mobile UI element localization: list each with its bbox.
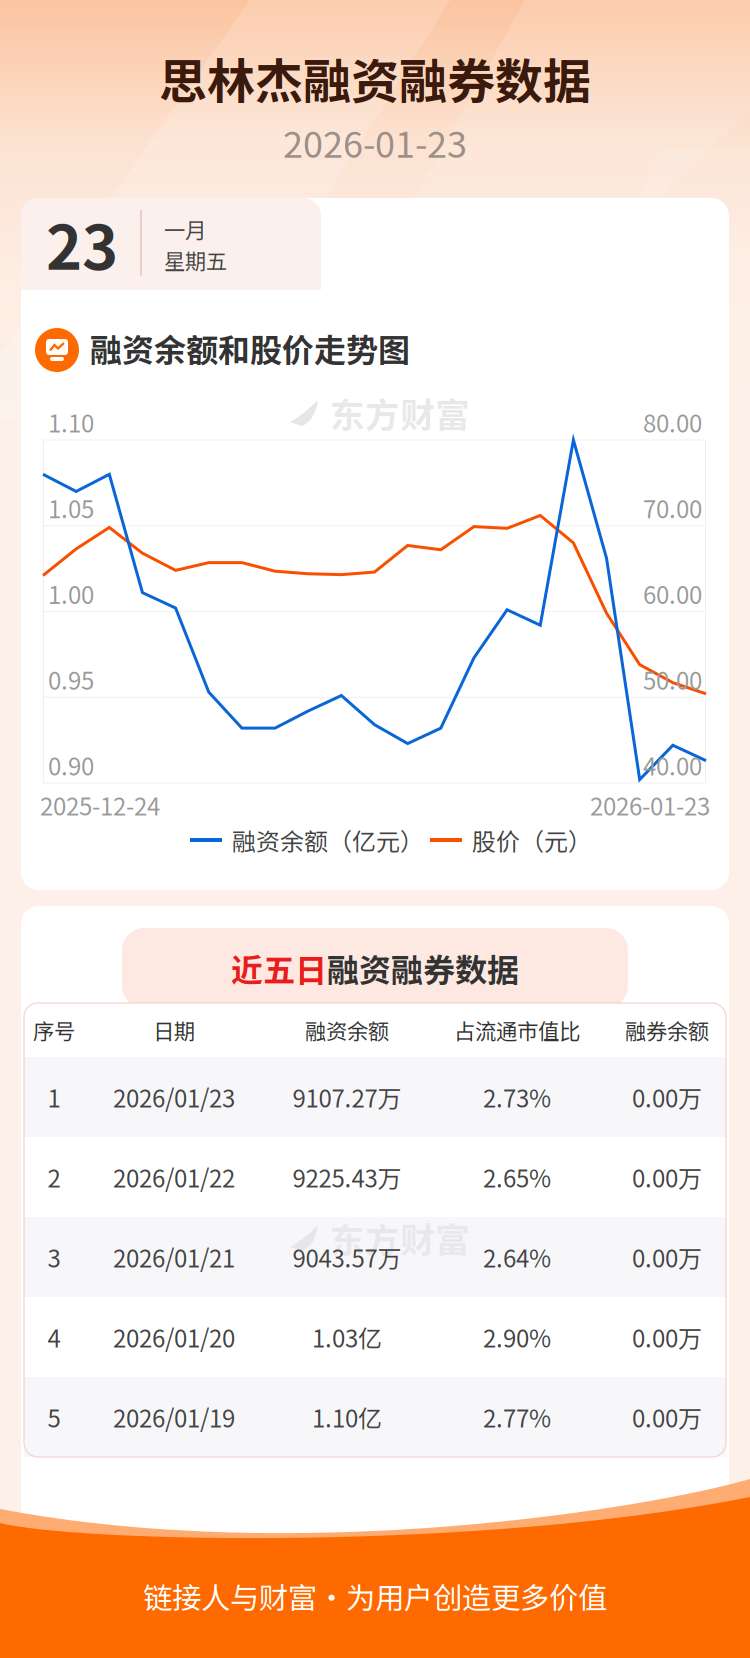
staticText: 1.10亿 bbox=[312, 1400, 382, 1434]
staticText: 1.10 bbox=[48, 405, 94, 439]
staticText: 0.00万 bbox=[632, 1400, 702, 1434]
staticText: 1 bbox=[47, 1080, 60, 1114]
staticText: 星期五 bbox=[164, 245, 227, 275]
staticText: 融资余额 bbox=[305, 1015, 389, 1045]
staticText: 0.00万 bbox=[632, 1240, 702, 1274]
staticText: 5 bbox=[47, 1400, 60, 1434]
staticText: 占流通市值比 bbox=[454, 1015, 580, 1045]
staticText: 1.05 bbox=[48, 490, 94, 525]
staticText: 23 bbox=[46, 199, 118, 287]
staticText: 近五日 bbox=[231, 945, 327, 991]
staticText: 2.65% bbox=[483, 1160, 551, 1194]
staticText: 链接人与财富·为用户创造更多价值 bbox=[143, 1575, 607, 1617]
staticText: 融资余额和股价走势图 bbox=[90, 325, 410, 371]
staticText: 60.00 bbox=[643, 576, 702, 611]
staticText: 序号 bbox=[33, 1015, 75, 1045]
staticText: 4 bbox=[47, 1320, 60, 1354]
staticText: 0.00万 bbox=[632, 1160, 702, 1194]
staticText: 80.00 bbox=[643, 405, 702, 439]
staticText: 东方财富 bbox=[330, 1213, 470, 1263]
staticText: 1.00 bbox=[48, 576, 94, 611]
staticText: 9107.27万 bbox=[292, 1080, 401, 1114]
staticText: 2.77% bbox=[483, 1400, 551, 1434]
staticText: 0.95 bbox=[48, 662, 94, 697]
staticText: 40.00 bbox=[643, 748, 702, 782]
staticText: 融券余额 bbox=[625, 1015, 709, 1045]
staticText: 日期 bbox=[153, 1015, 195, 1045]
staticText: 0.00万 bbox=[632, 1320, 702, 1354]
staticText: 2026/01/20 bbox=[113, 1320, 235, 1354]
staticText: 思林杰融资融券数据 bbox=[159, 43, 591, 113]
staticText: 3 bbox=[47, 1240, 60, 1274]
staticText: 2.90% bbox=[483, 1320, 551, 1354]
staticText: 融资融券数据 bbox=[327, 945, 519, 991]
staticText: 2025-12-24 bbox=[40, 788, 160, 822]
staticText: 0.90 bbox=[48, 748, 94, 782]
staticText: 2026-01-23 bbox=[283, 116, 467, 168]
staticText: 股价（元） bbox=[472, 823, 592, 857]
staticText: 2026/01/22 bbox=[113, 1160, 235, 1194]
staticText: 0.00万 bbox=[632, 1080, 702, 1114]
staticText: 2026/01/23 bbox=[113, 1080, 235, 1114]
staticText: 融资余额（亿元） bbox=[232, 823, 424, 857]
staticText: 2026/01/21 bbox=[113, 1240, 235, 1274]
staticText: 2 bbox=[47, 1160, 60, 1194]
staticText: 2026/01/19 bbox=[113, 1400, 235, 1434]
staticText: 9043.57万 bbox=[292, 1240, 401, 1274]
staticText: 东方财富 bbox=[330, 388, 470, 438]
staticText: 1.03亿 bbox=[312, 1320, 382, 1354]
staticText: 2026-01-23 bbox=[590, 788, 710, 822]
staticText: 2.73% bbox=[483, 1080, 551, 1114]
staticText: 一月 bbox=[164, 214, 206, 244]
staticText: 9225.43万 bbox=[292, 1160, 401, 1194]
staticText: 2.64% bbox=[483, 1240, 551, 1274]
staticText: 70.00 bbox=[643, 490, 702, 525]
staticText: 50.00 bbox=[643, 662, 702, 697]
